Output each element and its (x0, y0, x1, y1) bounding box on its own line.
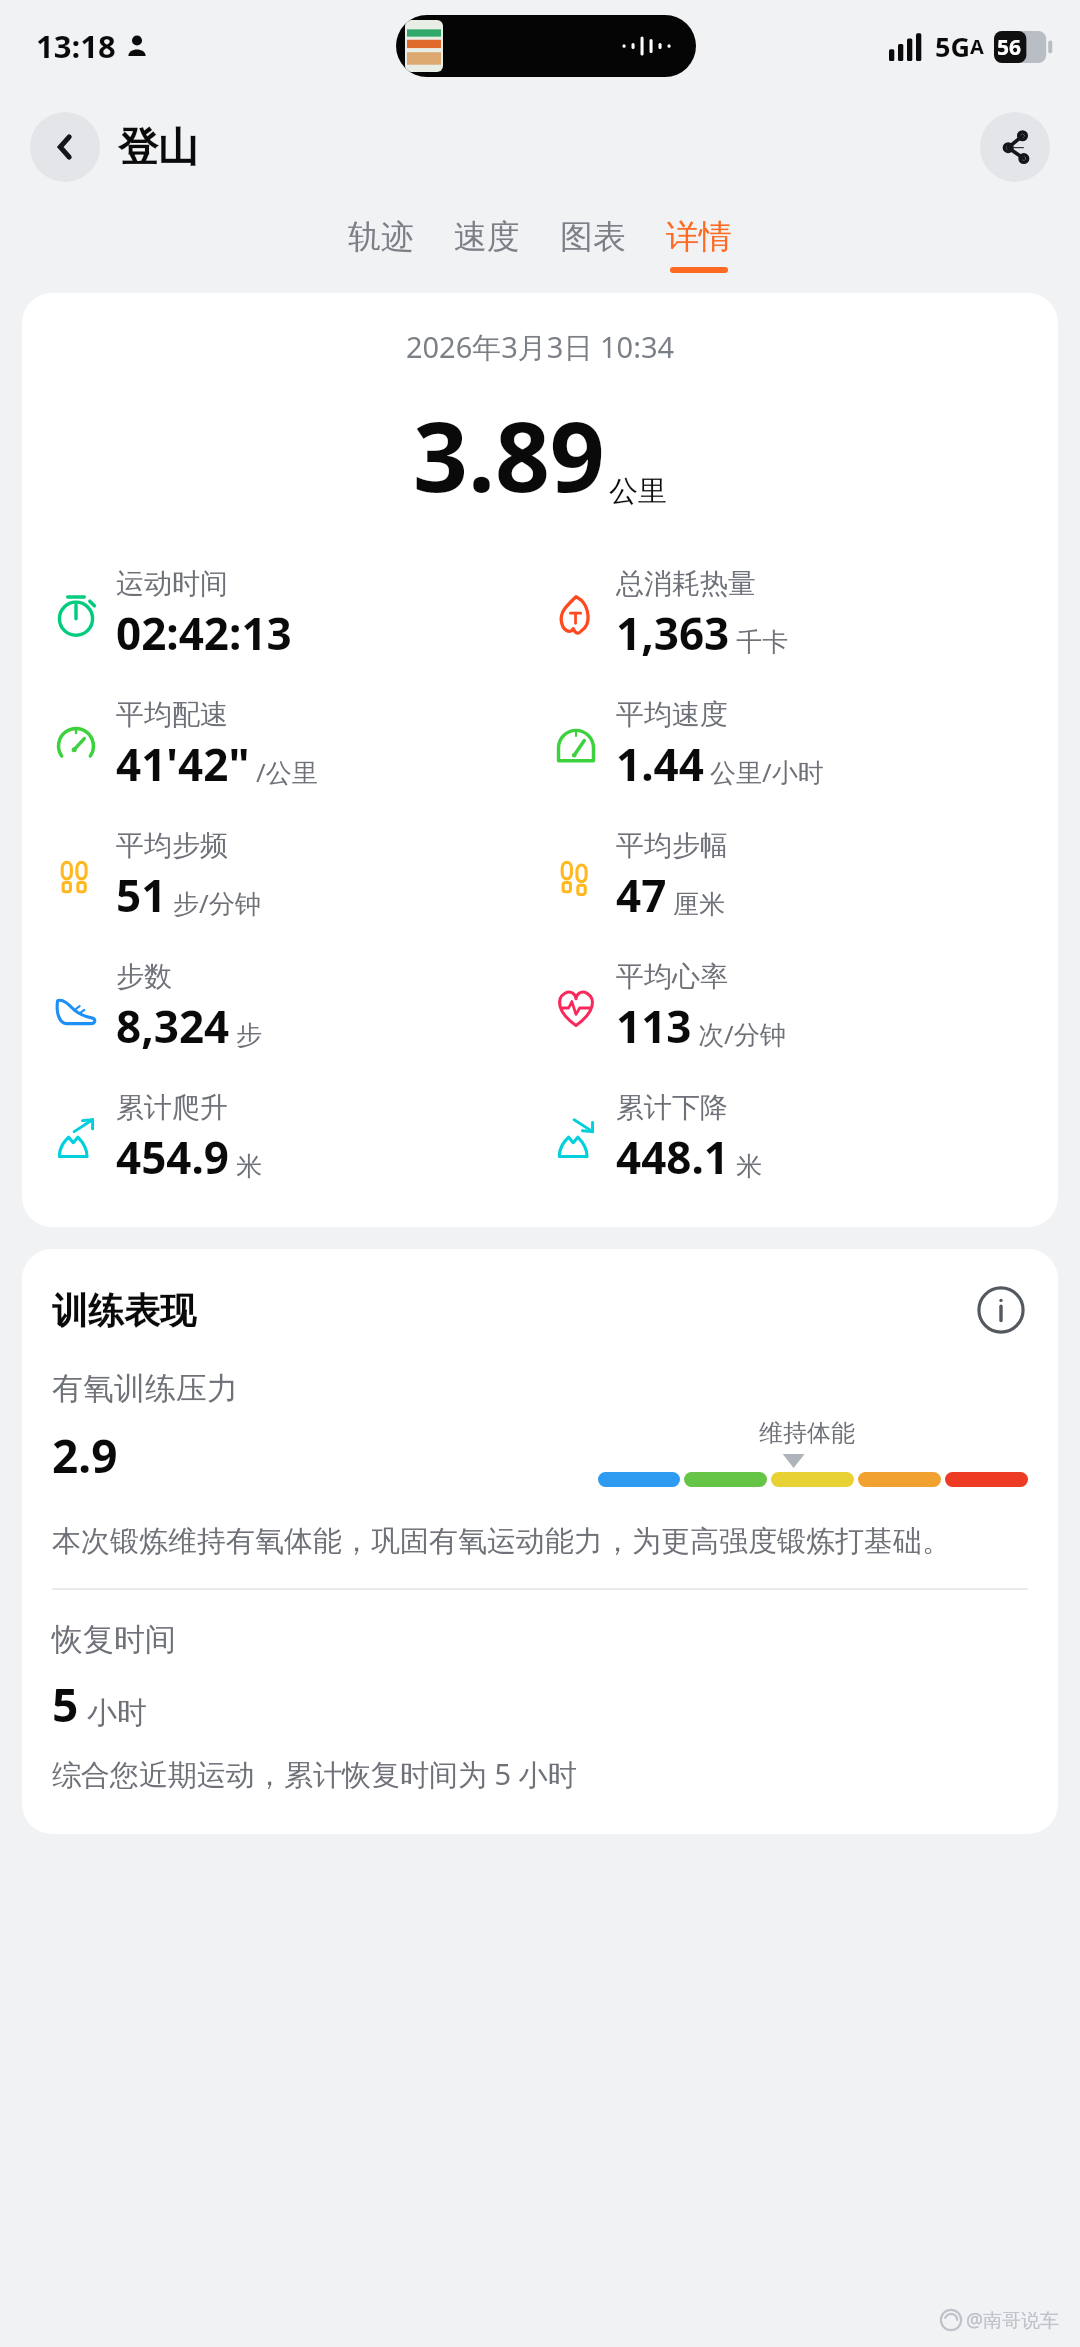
staticText: 平均步幅 (616, 828, 728, 863)
staticText: 累计爬升 (116, 1090, 228, 1125)
staticText: 56 (997, 33, 1022, 62)
staticText: 02:42:13 (116, 603, 292, 663)
button[interactable]: Share (980, 112, 1050, 182)
button[interactable]: 轨迹 (348, 216, 414, 273)
staticText: 有氧训练压力 (52, 1369, 238, 1408)
button[interactable]: Back (30, 112, 100, 182)
button[interactable]: 图表 (560, 216, 626, 273)
staticText: 米 (236, 1150, 262, 1183)
button[interactable]: 运动时间 (48, 566, 540, 663)
staticText: 步 (236, 1019, 262, 1052)
button[interactable]: 累计爬升 (48, 1090, 540, 1187)
staticText: 448.1 (616, 1127, 730, 1187)
staticText: 次/分钟 (698, 1016, 786, 1052)
staticText: 轨迹 (348, 216, 414, 258)
staticText: 13:18 (36, 25, 116, 67)
staticText: 5G (935, 28, 970, 65)
staticText: 运动时间 (116, 566, 228, 601)
staticText: 51 (116, 865, 167, 925)
staticText: 2026年3月3日 10:34 (22, 327, 1058, 367)
staticText: 1.44 (616, 734, 704, 794)
button[interactable]: 平均速度 (548, 697, 1058, 794)
staticText: 步数 (116, 959, 172, 994)
staticText: 2.9 (52, 1424, 118, 1487)
staticText: 图表 (560, 216, 626, 258)
button[interactable]: 平均步幅 (548, 828, 1058, 925)
staticText: 5 (52, 1673, 79, 1736)
staticText: 厘米 (673, 888, 725, 921)
button[interactable]: 平均心率 (548, 959, 1058, 1056)
button[interactable]: 速度 (454, 216, 520, 273)
staticText: 小时 (87, 1694, 147, 1732)
staticText: 登山 (118, 122, 198, 172)
staticText: /公里 (256, 754, 318, 790)
staticText: 步/分钟 (173, 885, 261, 921)
staticText: 47 (616, 865, 667, 925)
staticText: @南哥说车 (966, 2307, 1060, 2333)
staticText: 平均步频 (116, 828, 228, 863)
staticText: 平均配速 (116, 697, 228, 732)
staticText: 8,324 (116, 996, 230, 1056)
staticText: 公里/小时 (710, 754, 824, 790)
button[interactable]: 平均配速 (48, 697, 540, 794)
button[interactable]: Info (974, 1283, 1028, 1337)
staticText: 速度 (454, 216, 520, 258)
staticText: 累计下降 (616, 1090, 728, 1125)
staticText: 千卡 (736, 626, 788, 659)
staticText: A (970, 33, 984, 60)
button[interactable]: 累计下降 (548, 1090, 1058, 1187)
staticText: 454.9 (116, 1127, 230, 1187)
button[interactable]: 详情 (666, 216, 732, 273)
staticText: 1,363 (616, 603, 730, 663)
staticText: 米 (736, 1150, 762, 1183)
staticText: 详情 (666, 216, 732, 258)
staticText: 公里 (609, 473, 667, 510)
button[interactable]: 步数 (48, 959, 540, 1056)
staticText: 113 (616, 996, 692, 1056)
staticText: 恢复时间 (52, 1620, 176, 1659)
staticText: 训练表现 (52, 1288, 196, 1333)
staticText: 41'42" (116, 734, 250, 794)
button[interactable]: 平均步频 (48, 828, 540, 925)
staticText: 总消耗热量 (616, 566, 756, 601)
staticText: 平均心率 (616, 959, 728, 994)
staticText: 本次锻炼维持有氧体能，巩固有氧运动能力，为更高强度锻炼打基础。 (52, 1523, 951, 1560)
staticText: 维持体能 (759, 1418, 855, 1448)
staticText: 平均速度 (616, 697, 728, 732)
staticText: 综合您近期运动，累计恢复时间为 5 小时 (52, 1754, 577, 1794)
button[interactable]: 总消耗热量 (548, 566, 1058, 663)
staticText: 3.89 (413, 389, 605, 520)
